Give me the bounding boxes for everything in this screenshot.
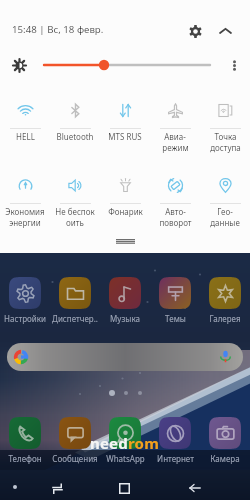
button[interactable]: Collapse panel: [213, 19, 237, 43]
staticText: Сообщения: [52, 453, 98, 464]
button[interactable]: MTS RUS: [100, 102, 150, 162]
staticText: Фонарик: [108, 206, 143, 217]
staticText: Темы: [165, 313, 186, 324]
button[interactable]: Диспетчер..: [50, 277, 100, 324]
staticText: Экономия: [5, 206, 45, 217]
button[interactable]: Bluetooth: [50, 102, 100, 162]
button[interactable]: Телефон: [0, 417, 50, 464]
staticText: энергии: [9, 217, 41, 228]
staticText: Не беспок: [55, 206, 95, 217]
button[interactable]: Музыка: [100, 277, 150, 324]
button[interactable]: WhatsApp: [100, 417, 150, 464]
staticText: данные: [210, 217, 240, 228]
button[interactable]: Back: [184, 477, 206, 499]
staticText: WhatsApp: [106, 453, 145, 464]
button[interactable]: Камера: [200, 417, 250, 464]
button[interactable]: Настройки: [0, 277, 50, 324]
button[interactable]: Recent apps: [46, 477, 68, 499]
staticText: rom: [128, 433, 160, 453]
button[interactable]: Галерея: [200, 277, 250, 324]
staticText: Авиа-: [164, 131, 186, 142]
staticText: Музыка: [110, 313, 140, 324]
button[interactable]: Home: [113, 477, 135, 499]
staticText: MTS RUS: [108, 131, 142, 142]
staticText: need: [90, 433, 128, 453]
button[interactable]: Search: [7, 343, 243, 371]
button[interactable]: HELL: [0, 102, 50, 162]
staticText: Интернет: [157, 453, 194, 464]
staticText: Камера: [210, 453, 240, 464]
staticText: Диспетчер..: [52, 313, 98, 324]
staticText: Bluetooth: [56, 131, 94, 142]
button[interactable]: Интернет: [150, 417, 200, 464]
button[interactable]: Гео-: [200, 177, 250, 237]
button[interactable]: Фонарик: [100, 177, 150, 237]
staticText: оить: [66, 217, 84, 228]
staticText: режим: [162, 142, 189, 153]
staticText: Настройки: [4, 313, 46, 324]
staticText: доступа: [210, 142, 241, 153]
button[interactable]: Авто-: [150, 177, 200, 237]
button[interactable]: Не беспок: [50, 177, 100, 237]
button[interactable]: Экономия: [0, 177, 50, 237]
staticText: Точка: [214, 131, 237, 142]
staticText: Телефон: [8, 453, 42, 464]
button[interactable]: Авиа-: [150, 102, 200, 162]
button[interactable]: More options: [223, 54, 245, 76]
staticText: HELL: [16, 131, 35, 142]
staticText: 15:48 | Вс, 18 февр.: [12, 23, 104, 36]
staticText: Авто-: [165, 206, 186, 217]
staticText: Галерея: [209, 313, 241, 324]
staticText: Гео-: [217, 206, 233, 217]
button[interactable]: Settings: [183, 19, 207, 43]
button[interactable]: Темы: [150, 277, 200, 324]
button[interactable]: Точка: [200, 102, 250, 162]
button[interactable]: Сообщения: [50, 417, 100, 464]
staticText: поворот: [159, 217, 192, 228]
